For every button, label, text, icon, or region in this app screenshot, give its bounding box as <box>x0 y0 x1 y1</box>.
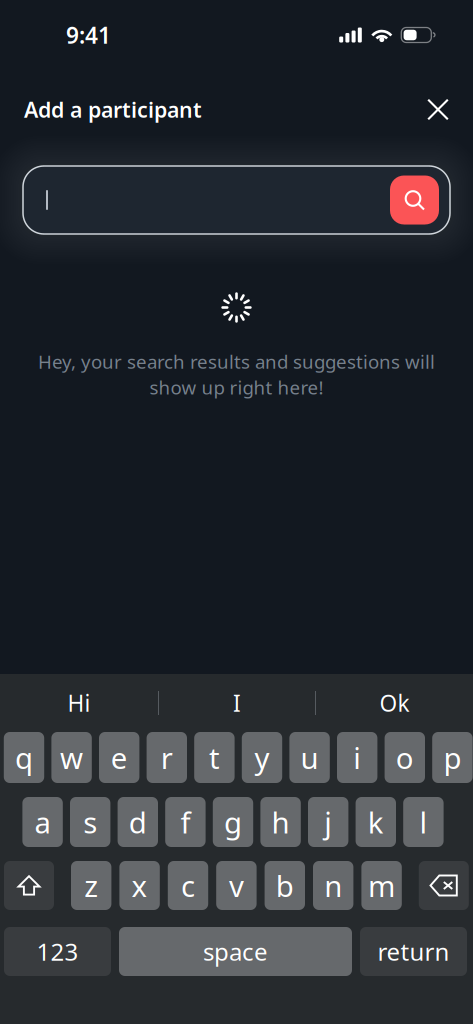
staticText: show up right here! <box>149 375 323 400</box>
button[interactable]: Close <box>419 90 457 128</box>
button[interactable]: z <box>71 861 111 910</box>
button[interactable]: i <box>337 732 377 783</box>
staticText: u <box>301 738 319 777</box>
button[interactable]: p <box>432 732 473 783</box>
button[interactable]: Shift <box>4 861 54 910</box>
staticText: f <box>180 802 190 841</box>
button[interactable]: Ok <box>316 680 473 726</box>
staticText: l <box>419 802 427 841</box>
staticText: z <box>84 866 98 905</box>
staticText: q <box>15 738 33 777</box>
staticText: r <box>161 738 173 777</box>
button[interactable]: r <box>147 732 187 783</box>
button[interactable]: y <box>242 732 282 783</box>
staticText: a <box>35 802 51 841</box>
button[interactable]: 123 <box>4 927 111 976</box>
staticText: e <box>111 738 128 777</box>
staticText: Hey, your search results and suggestions… <box>38 349 435 374</box>
button[interactable]: Hi <box>0 680 158 726</box>
button[interactable]: a <box>22 797 63 847</box>
button[interactable]: v <box>216 861 257 910</box>
button[interactable]: t <box>194 732 235 783</box>
staticText: b <box>276 866 294 905</box>
staticText: g <box>224 802 242 841</box>
button[interactable]: Delete <box>419 861 469 910</box>
staticText: Add a participant <box>24 95 202 124</box>
staticText: 9:41 <box>66 20 111 50</box>
button[interactable]: g <box>213 797 253 847</box>
staticText: j <box>324 802 332 841</box>
staticText: p <box>443 738 461 777</box>
button[interactable]: h <box>260 797 301 847</box>
staticText: Hi <box>67 688 90 718</box>
button[interactable]: s <box>70 797 110 847</box>
button[interactable]: I <box>159 680 315 726</box>
staticText: I <box>233 688 241 718</box>
staticText: space <box>203 936 268 967</box>
staticText: Ok <box>379 688 409 718</box>
staticText: i <box>353 738 361 777</box>
button[interactable]: Search <box>390 175 439 224</box>
staticText: m <box>368 866 395 905</box>
button[interactable]: f <box>165 797 206 847</box>
button[interactable]: w <box>51 732 92 783</box>
staticText: h <box>272 802 290 841</box>
staticText: w <box>60 738 83 777</box>
staticText: 123 <box>36 936 78 967</box>
staticText: y <box>254 738 269 777</box>
button[interactable]: l <box>403 797 444 847</box>
staticText: n <box>324 866 342 905</box>
staticText: v <box>229 866 244 905</box>
staticText: t <box>209 738 220 777</box>
button[interactable]: b <box>265 861 305 910</box>
button[interactable]: e <box>99 732 139 783</box>
button[interactable]: j <box>308 797 348 847</box>
button[interactable]: u <box>289 732 330 783</box>
button[interactable]: m <box>361 861 402 910</box>
staticText: return <box>377 936 449 967</box>
staticText: d <box>129 802 147 841</box>
button[interactable]: space <box>119 927 352 976</box>
staticText: o <box>396 738 414 777</box>
staticText: k <box>368 802 384 841</box>
button[interactable]: k <box>356 797 396 847</box>
button[interactable]: n <box>313 861 353 910</box>
button[interactable]: o <box>385 732 425 783</box>
button[interactable]: q <box>4 732 44 783</box>
staticText: s <box>83 802 97 841</box>
button[interactable]: x <box>119 861 160 910</box>
staticText: x <box>132 866 148 905</box>
button[interactable]: d <box>118 797 158 847</box>
staticText: c <box>181 866 195 905</box>
button[interactable]: c <box>168 861 208 910</box>
button[interactable]: return <box>360 927 467 976</box>
